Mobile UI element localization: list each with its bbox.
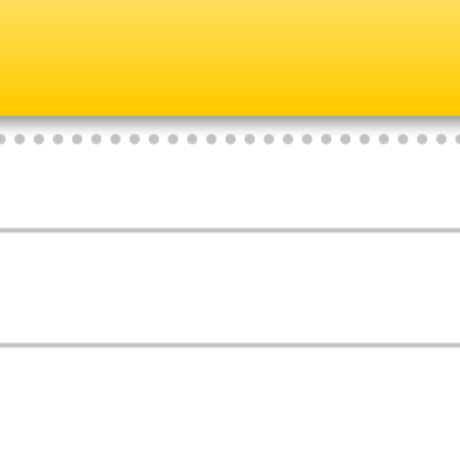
button[interactable]: Note text xyxy=(0,116,460,460)
button[interactable]: Note colour xyxy=(0,0,460,116)
